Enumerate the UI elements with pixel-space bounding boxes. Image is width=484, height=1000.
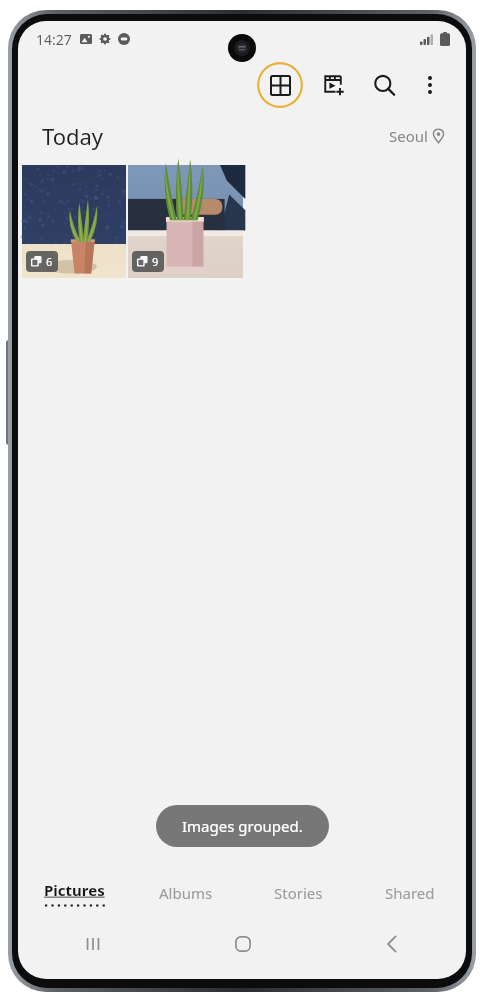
button[interactable]: Albums xyxy=(130,873,242,913)
staticText: 6 xyxy=(46,254,53,269)
staticText: Pictures xyxy=(44,880,105,900)
button[interactable]: Create movie xyxy=(312,63,356,107)
button[interactable]: View as grid xyxy=(256,61,304,109)
button[interactable]: Seoul xyxy=(387,122,446,150)
button[interactable]: Stories xyxy=(242,873,354,913)
button[interactable]: Pictures xyxy=(18,873,130,913)
button[interactable]: 9 xyxy=(128,165,243,278)
staticText: Shared xyxy=(385,883,435,903)
staticText: 14:27 xyxy=(36,30,72,49)
staticText: Albums xyxy=(159,883,213,903)
staticText: 9 xyxy=(152,254,159,269)
button[interactable]: More options xyxy=(408,63,452,107)
button[interactable]: Home xyxy=(168,923,317,965)
button[interactable]: Shared xyxy=(354,873,466,913)
staticText: Seoul xyxy=(389,126,428,146)
button[interactable]: Recent apps xyxy=(18,923,168,965)
staticText: Today xyxy=(42,121,104,151)
button[interactable]: Search xyxy=(362,63,406,107)
staticText: Stories xyxy=(274,883,323,903)
button[interactable]: 6 xyxy=(22,165,126,278)
button[interactable]: Back xyxy=(317,923,466,965)
staticText: Images grouped. xyxy=(182,816,303,836)
